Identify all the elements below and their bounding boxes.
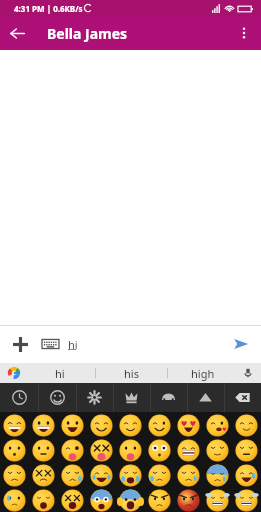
staticText: 4:31 PM | 0.6KB/s xyxy=(14,3,83,14)
button[interactable]: Food xyxy=(113,383,150,412)
button[interactable]: Travel xyxy=(150,383,187,412)
button[interactable]: Backspace xyxy=(224,383,261,412)
button[interactable]: Voice input xyxy=(239,364,257,382)
button[interactable]: his xyxy=(95,363,167,383)
staticText: hi xyxy=(55,366,65,381)
staticText: Bella James xyxy=(47,24,128,43)
button[interactable]: Attach xyxy=(5,329,35,359)
button[interactable]: Smileys xyxy=(38,383,76,412)
staticText: hi xyxy=(68,337,78,352)
button[interactable]: Objects xyxy=(187,383,224,412)
button[interactable]: high xyxy=(167,363,239,383)
button[interactable]: Send xyxy=(226,329,256,359)
staticText: his xyxy=(124,366,139,381)
button[interactable]: Recent xyxy=(0,383,38,412)
button[interactable]: Google xyxy=(5,364,23,382)
button[interactable]: Keyboard xyxy=(35,329,65,359)
button[interactable]: hi xyxy=(24,363,95,383)
button[interactable]: Back xyxy=(0,16,34,50)
staticText: high xyxy=(191,366,215,381)
button[interactable]: Nature xyxy=(76,383,113,412)
button[interactable]: More options xyxy=(227,16,261,50)
